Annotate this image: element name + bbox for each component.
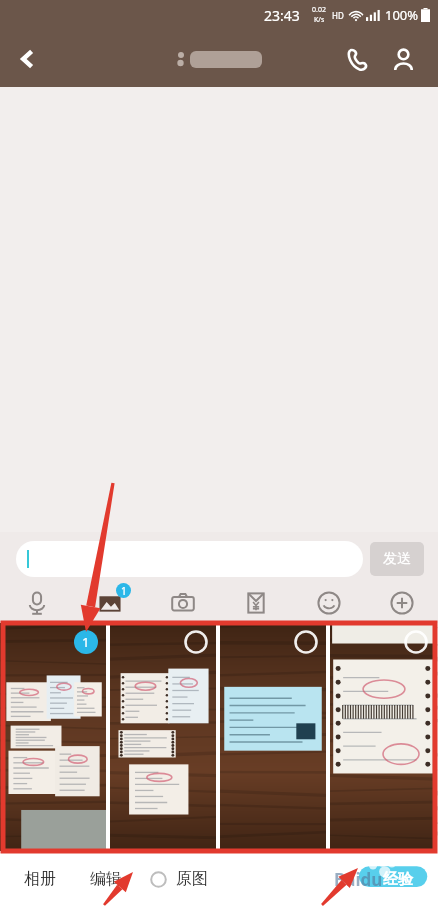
button[interactable]: Select photo	[184, 630, 208, 654]
button[interactable]: Contact profile	[382, 38, 424, 80]
button[interactable]: 相册	[20, 863, 60, 895]
button[interactable]: Select photo	[110, 623, 216, 851]
staticText: Baidu	[334, 868, 383, 891]
staticText: 100%	[385, 6, 419, 24]
button[interactable]: Camera	[165, 585, 201, 621]
button[interactable]: 原图	[150, 863, 208, 895]
button[interactable]: 编辑	[86, 863, 126, 895]
button[interactable]: Emoji	[311, 585, 347, 621]
staticText: K/s	[314, 15, 325, 25]
staticText: 发送	[383, 550, 411, 568]
button[interactable]: Select photo	[330, 623, 436, 851]
staticText: 1	[121, 584, 127, 598]
staticText: 23:43	[264, 6, 300, 25]
staticText: 经验	[383, 870, 413, 889]
button[interactable]: Red packet	[238, 585, 274, 621]
button[interactable]: Select photo	[404, 630, 428, 654]
staticText: HD	[332, 10, 344, 21]
staticText: 原图	[176, 869, 208, 889]
button[interactable]: Select photo	[220, 623, 326, 851]
button[interactable]: Gallery	[92, 585, 128, 621]
button[interactable]: Back	[0, 30, 56, 87]
button[interactable]: Selected photo	[0, 623, 106, 851]
staticText: 相册	[24, 869, 56, 889]
staticText: 1	[82, 633, 90, 651]
staticText: 编辑	[90, 869, 122, 889]
button[interactable]: More	[384, 585, 420, 621]
button[interactable]: 发送	[370, 542, 424, 576]
button[interactable]: Voice message	[19, 585, 55, 621]
button[interactable]: Selected photo	[74, 630, 98, 654]
button[interactable]: Call	[336, 38, 378, 80]
staticText: 0.02	[312, 5, 326, 15]
button[interactable]: Select photo	[294, 630, 318, 654]
button[interactable]	[16, 541, 363, 577]
